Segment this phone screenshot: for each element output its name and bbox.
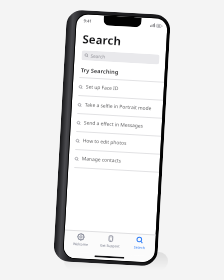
staticText: 9:41 (83, 18, 93, 25)
button[interactable]: Manage contacts (68, 150, 160, 172)
staticText: Try Searching (80, 66, 119, 76)
staticText: Send a effect in Messages (84, 119, 144, 130)
staticText: How to edit photos (83, 137, 127, 147)
staticText: Take a selfie in Portrait mode (85, 101, 152, 112)
staticText: Get Support (100, 242, 120, 249)
button[interactable]: Set up Face ID (72, 78, 164, 100)
button[interactable]: Search (81, 50, 160, 64)
button[interactable]: Search (125, 235, 154, 251)
staticText: Search (82, 31, 122, 49)
button[interactable]: Send a effect in Messages (70, 114, 162, 136)
button[interactable]: How to edit photos (69, 132, 161, 154)
button[interactable]: Welcome (66, 232, 95, 248)
staticText: Search (134, 244, 145, 250)
button[interactable]: Take a selfie in Portrait mode (71, 96, 163, 118)
staticText: Manage contacts (82, 155, 122, 165)
staticText: Welcome (73, 241, 88, 247)
button[interactable]: Get Support (96, 233, 125, 250)
staticText: Set up Face ID (86, 83, 119, 92)
staticText: Search (90, 53, 106, 59)
